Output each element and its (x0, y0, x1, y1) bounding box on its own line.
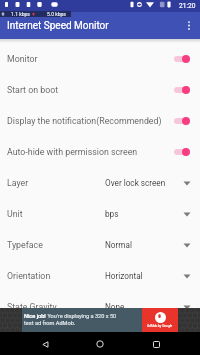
staticText: Auto-hide with permission screen (7, 147, 174, 157)
staticText: Nice job! (24, 313, 46, 320)
staticText: bps (105, 209, 183, 219)
button[interactable]: Back (34, 333, 56, 355)
staticText: Normal (105, 240, 183, 250)
staticText: 1.1 kbps (11, 11, 30, 17)
staticText: You're displaying a 320 x 50 (46, 313, 117, 320)
button[interactable]: More options (178, 15, 200, 37)
staticText: Horizontal (105, 271, 183, 281)
button[interactable]: Orientation (0, 260, 200, 291)
staticText: Typeface (7, 240, 105, 250)
staticText: Monitor (7, 54, 174, 64)
staticText: test ad from AdMob. (24, 320, 76, 327)
button[interactable]: Home (89, 333, 111, 355)
staticText: Internet Speed Monitor (7, 20, 109, 32)
button[interactable]: Recent apps (145, 333, 167, 355)
staticText: Unit (7, 209, 105, 219)
staticText: AdMob by Google (147, 324, 173, 328)
staticText: 5.0 kbps (47, 11, 66, 17)
button[interactable]: Layer (0, 167, 200, 198)
button[interactable]: Typeface (0, 229, 200, 260)
staticText: Over lock screen (105, 178, 183, 188)
button[interactable]: Start on boot (0, 74, 200, 105)
staticText: Orientation (7, 271, 105, 281)
button[interactable]: State Gravity (0, 291, 200, 322)
staticText: Start on boot (7, 85, 174, 95)
button[interactable]: Display the notification(Recommended) (0, 105, 200, 136)
staticText: State Gravity (7, 302, 105, 312)
button[interactable]: Monitor (0, 43, 200, 74)
button[interactable]: Auto-hide with permission screen (0, 136, 200, 167)
staticText: Layer (7, 178, 105, 188)
staticText: Display the notification(Recommended) (7, 116, 174, 126)
button[interactable]: Unit (0, 198, 200, 229)
staticText: 21:20 (179, 2, 196, 10)
staticText: None (105, 302, 183, 312)
